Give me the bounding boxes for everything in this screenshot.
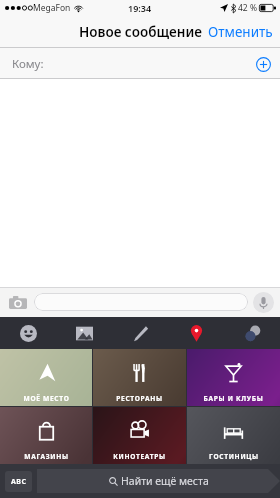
button[interactable]: МАГАЗИНЫ <box>0 407 92 464</box>
button[interactable]: Voice message <box>253 292 274 313</box>
button[interactable]: Найти ещё места <box>37 469 280 493</box>
staticText: ГОСТИНИЦЫ <box>209 452 259 461</box>
button[interactable]: Отменить <box>201 18 280 46</box>
button[interactable]: Emoji <box>0 317 56 349</box>
button[interactable]: ABC keyboard <box>5 471 32 492</box>
button[interactable]: Camera <box>6 290 30 314</box>
button[interactable]: Draw <box>112 317 168 349</box>
staticText: 42 % <box>238 2 257 14</box>
button[interactable]: Apps <box>224 317 280 349</box>
staticText: БАРЫ И КЛУБЫ <box>203 394 264 403</box>
staticText: Найти ещё места <box>121 474 209 488</box>
button[interactable]: Places <box>168 317 224 349</box>
button[interactable]: БАРЫ И КЛУБЫ <box>187 349 280 406</box>
button[interactable]: РЕСТОРАНЫ <box>93 349 186 406</box>
button[interactable]: Add contact <box>253 54 273 74</box>
staticText: МОЁ МЕСТО <box>23 394 70 403</box>
staticText: МАГАЗИНЫ <box>24 452 69 461</box>
button[interactable] <box>34 293 248 311</box>
button[interactable]: Photos <box>56 317 112 349</box>
staticText: MegaFon <box>33 2 71 14</box>
staticText: Отменить <box>208 23 273 41</box>
staticText: Кому: <box>12 56 44 72</box>
staticText: РЕСТОРАНЫ <box>116 394 163 403</box>
staticText: КИНОТЕАТРЫ <box>113 452 166 461</box>
staticText: Новое сообщение <box>79 23 202 41</box>
staticText: ABC <box>11 477 27 487</box>
staticText: 19:34 <box>128 2 152 14</box>
button[interactable]: КИНОТЕАТРЫ <box>93 407 186 464</box>
button[interactable]: МОЁ МЕСТО <box>0 349 92 406</box>
button[interactable]: ГОСТИНИЦЫ <box>187 407 280 464</box>
